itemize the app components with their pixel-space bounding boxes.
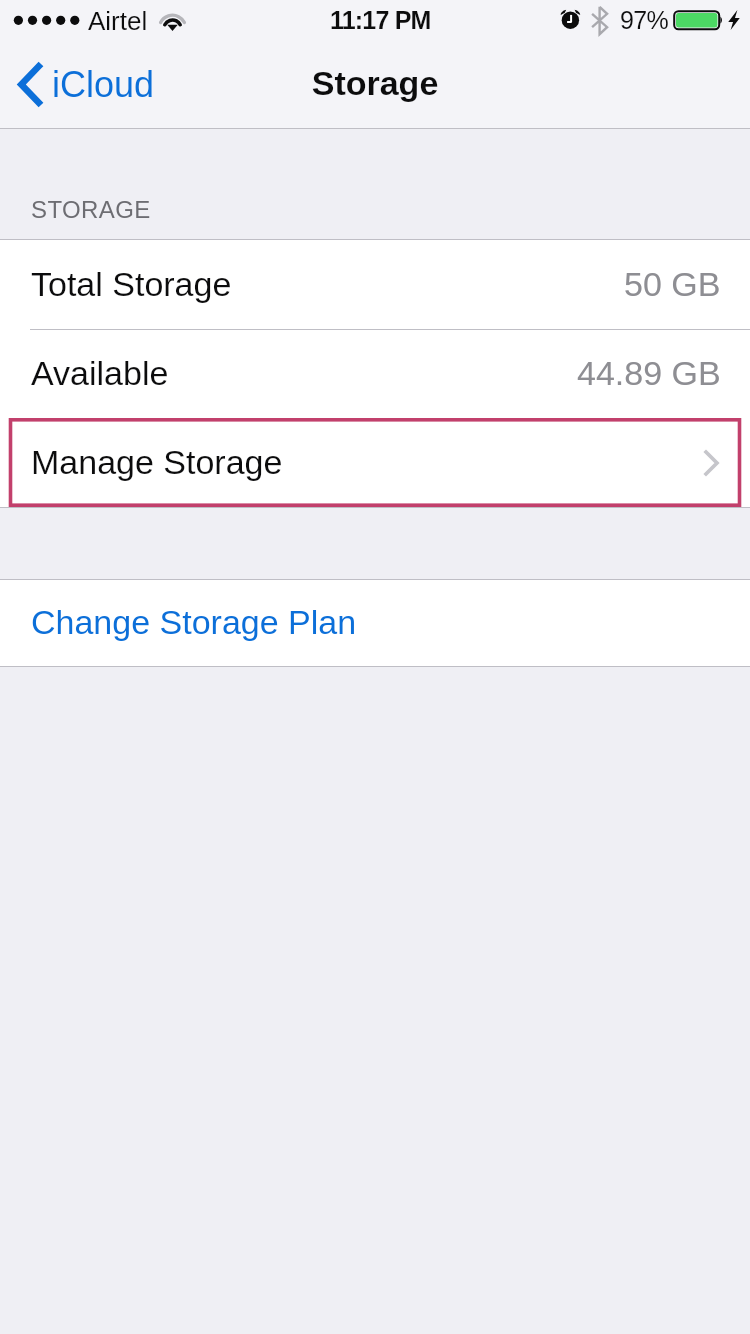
staticText: 50 GB bbox=[624, 265, 721, 303]
other: Bluetooth on bbox=[591, 5, 609, 36]
other: Battery 97 percent, charging bbox=[673, 10, 725, 31]
button[interactable]: Change Storage Plan bbox=[0, 580, 750, 666]
other: Wi-Fi connected bbox=[157, 6, 188, 32]
staticText: iCloud bbox=[52, 64, 155, 104]
staticText: Storage bbox=[0, 64, 750, 102]
button[interactable]: Back to iCloud bbox=[6, 40, 166, 128]
staticText: Change Storage Plan bbox=[31, 603, 357, 641]
button[interactable]: Manage Storage bbox=[0, 418, 750, 507]
button[interactable]: Total Storage bbox=[0, 240, 750, 329]
staticText: 97% bbox=[620, 6, 668, 34]
staticText: 11:17 PM bbox=[330, 6, 431, 34]
other: Alarm set bbox=[560, 5, 582, 35]
staticText: Total Storage bbox=[31, 265, 232, 303]
button[interactable]: Available bbox=[0, 330, 750, 418]
staticText: STORAGE bbox=[31, 196, 151, 223]
staticText: Available bbox=[31, 354, 169, 392]
other: Charging bbox=[728, 10, 740, 30]
staticText: Manage Storage bbox=[31, 443, 283, 481]
staticText: 44.89 GB bbox=[577, 354, 721, 392]
staticText: Airtel bbox=[88, 6, 148, 35]
